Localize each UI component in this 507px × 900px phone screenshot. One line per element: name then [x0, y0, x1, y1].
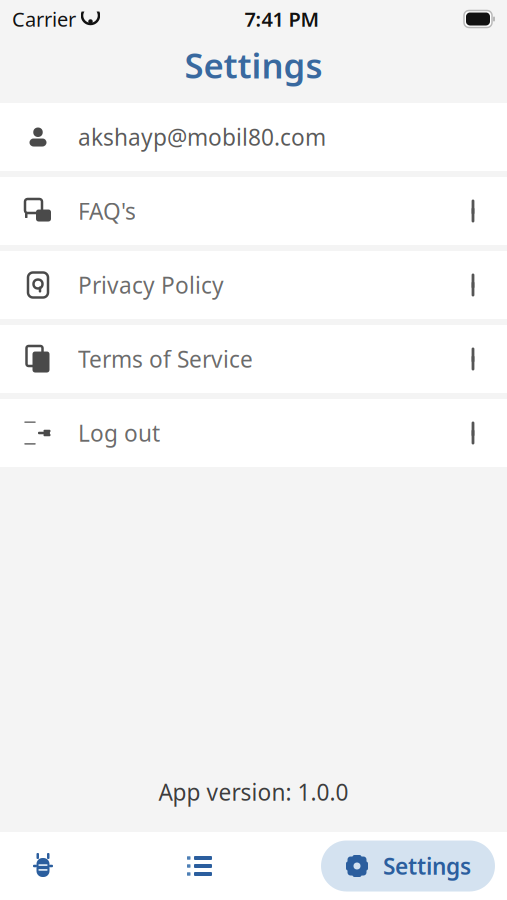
staticText: FAQ's: [78, 196, 136, 226]
staticText: akshayp@mobil80.com: [78, 122, 326, 152]
button[interactable]: Terms of Service: [0, 325, 507, 393]
staticText: Terms of Service: [78, 344, 253, 374]
staticText: App version: 1.0.0: [158, 777, 348, 807]
button[interactable]: Privacy Policy: [0, 251, 507, 319]
staticText: Settings: [184, 42, 322, 88]
button[interactable]: List: [164, 832, 234, 900]
staticText: Carrier: [12, 6, 76, 32]
button[interactable]: Report a bug: [8, 832, 78, 900]
button[interactable]: Log out: [0, 399, 507, 467]
button[interactable]: akshayp@mobil80.com: [0, 103, 507, 171]
staticText: Settings: [383, 851, 471, 881]
button[interactable]: FAQ's: [0, 177, 507, 245]
button[interactable]: Settings: [321, 840, 495, 891]
staticText: Privacy Policy: [78, 270, 224, 300]
staticText: Log out: [78, 418, 160, 448]
staticText: 7:41 PM: [244, 6, 319, 32]
